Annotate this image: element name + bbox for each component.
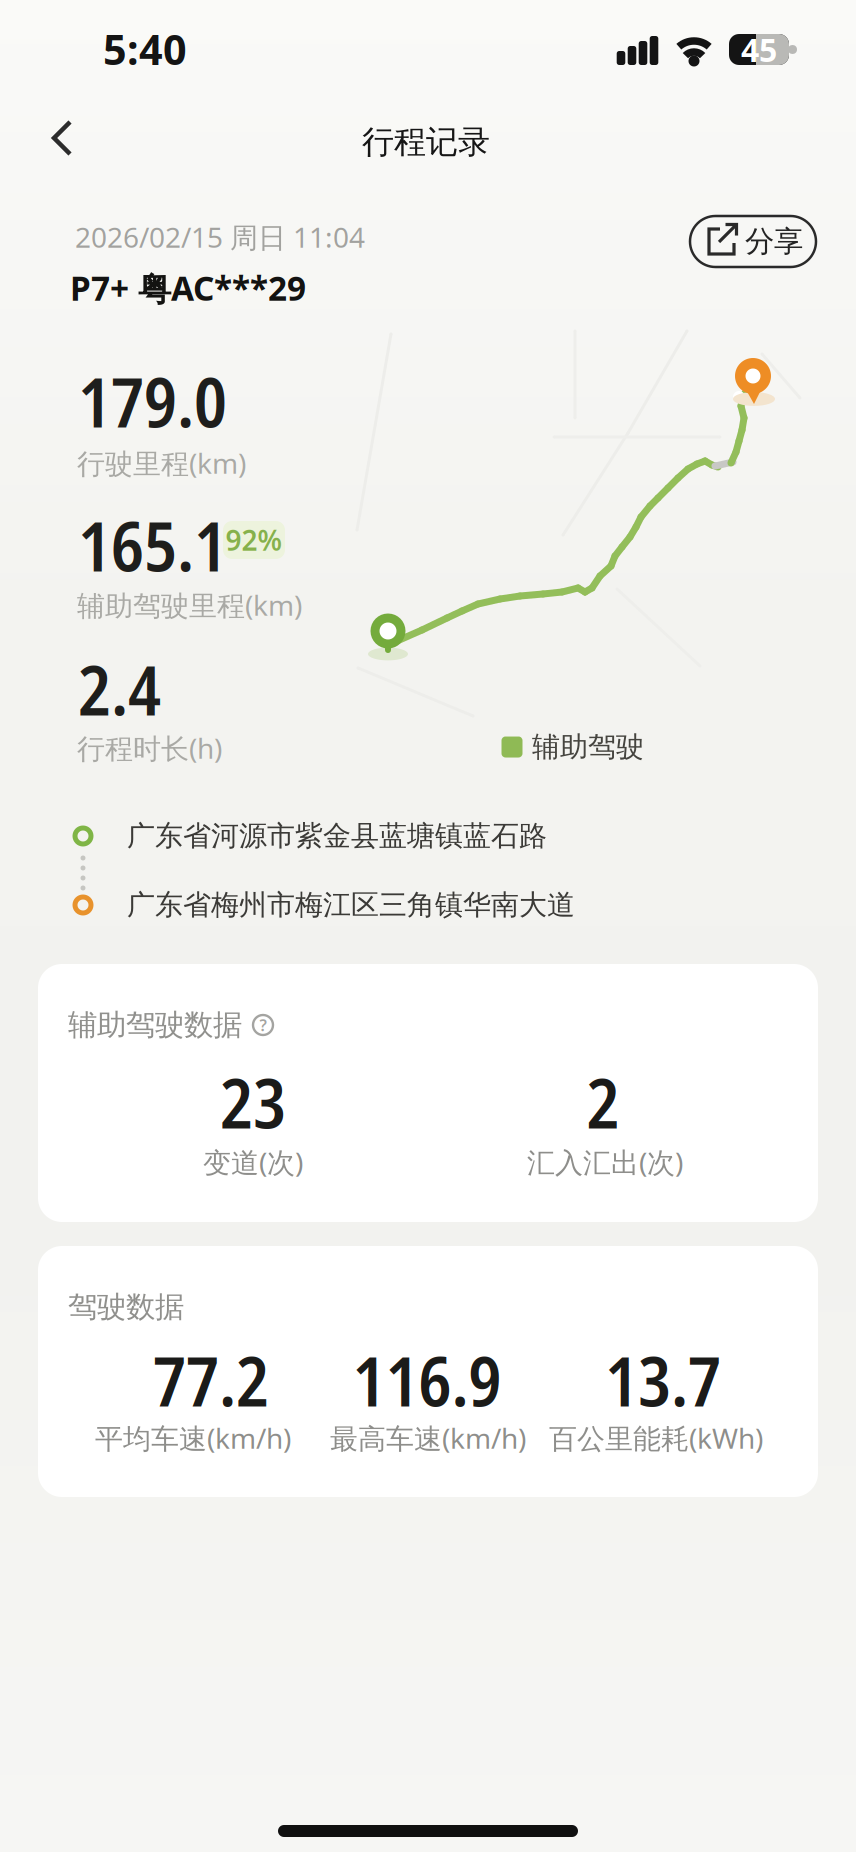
staticText: 179.0 <box>78 355 227 447</box>
staticText: P7+ 粤AC***29 <box>70 266 306 310</box>
staticText: 5:40 <box>103 22 187 76</box>
staticText: 92% <box>225 521 282 559</box>
staticText: 2 <box>586 1056 619 1148</box>
staticText: 百公里能耗(kWh) <box>549 1419 763 1457</box>
staticText: 驾驶数据 <box>68 1289 184 1325</box>
staticText: 广东省梅州市梅江区三角镇华南大道 <box>127 888 575 922</box>
staticText: 行程记录 <box>362 122 490 162</box>
staticText: 辅助驾驶数据 <box>68 1007 242 1043</box>
staticText: 广东省河源市紫金县蓝塘镇蓝石路 <box>127 819 547 853</box>
staticText: 116.9 <box>352 1334 501 1426</box>
staticText: 165.1 <box>78 499 227 591</box>
staticText: 变道(次) <box>203 1143 303 1181</box>
staticText: 行驶里程(km) <box>77 444 246 482</box>
staticText: 23 <box>220 1056 286 1148</box>
button[interactable] <box>32 108 92 168</box>
staticText: 13.7 <box>605 1334 721 1426</box>
staticText: ? <box>259 1014 266 1036</box>
staticText: 2.4 <box>78 643 161 735</box>
staticText: 77.2 <box>153 1334 269 1426</box>
staticText: 分享 <box>745 223 803 259</box>
staticText: 汇入汇出(次) <box>527 1143 683 1181</box>
button[interactable]: ? <box>251 1013 275 1037</box>
button[interactable]: 分享 <box>690 216 816 267</box>
staticText: 行程时长(h) <box>77 729 222 767</box>
staticText: 最高车速(km/h) <box>330 1419 526 1457</box>
staticText: 辅助驾驶里程(km) <box>77 586 302 624</box>
staticText: 辅助驾驶 <box>532 730 644 764</box>
staticText: 45 <box>741 28 777 71</box>
staticText: 2026/02/15 周日 11:04 <box>75 218 365 256</box>
staticText: 平均车速(km/h) <box>95 1419 291 1457</box>
